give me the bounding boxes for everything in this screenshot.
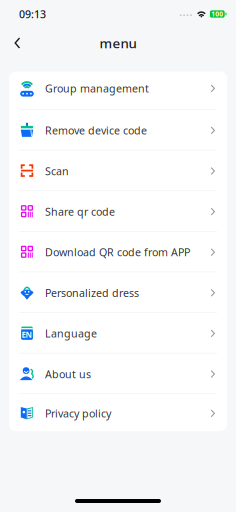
staticText: 100 (211, 10, 223, 18)
button[interactable]: Privacy policy (9, 394, 227, 431)
staticText: Privacy policy (45, 406, 111, 420)
button[interactable]: Group management (9, 71, 227, 110)
button[interactable]: About us (9, 353, 227, 394)
staticText: About us (45, 367, 91, 381)
staticText: Group management (45, 81, 149, 95)
button[interactable]: Download QR code from APP (9, 232, 227, 272)
staticText: Share qr code (45, 204, 115, 219)
button[interactable]: EN (9, 313, 227, 353)
button[interactable]: Share qr code (9, 191, 227, 232)
staticText: EN (21, 329, 32, 340)
button[interactable]: Back (0, 29, 36, 57)
staticText: Scan (45, 164, 69, 178)
button[interactable]: Scan (9, 150, 227, 191)
button[interactable]: Remove device code (9, 110, 227, 150)
staticText: Download QR code from APP (45, 245, 190, 259)
button[interactable]: Personalized dress (9, 272, 227, 313)
staticText: Remove device code (45, 123, 147, 137)
staticText: 09:13 (19, 7, 46, 21)
staticText: Personalized dress (45, 286, 139, 300)
staticText: menu (99, 34, 136, 52)
staticText: Language (45, 326, 97, 340)
